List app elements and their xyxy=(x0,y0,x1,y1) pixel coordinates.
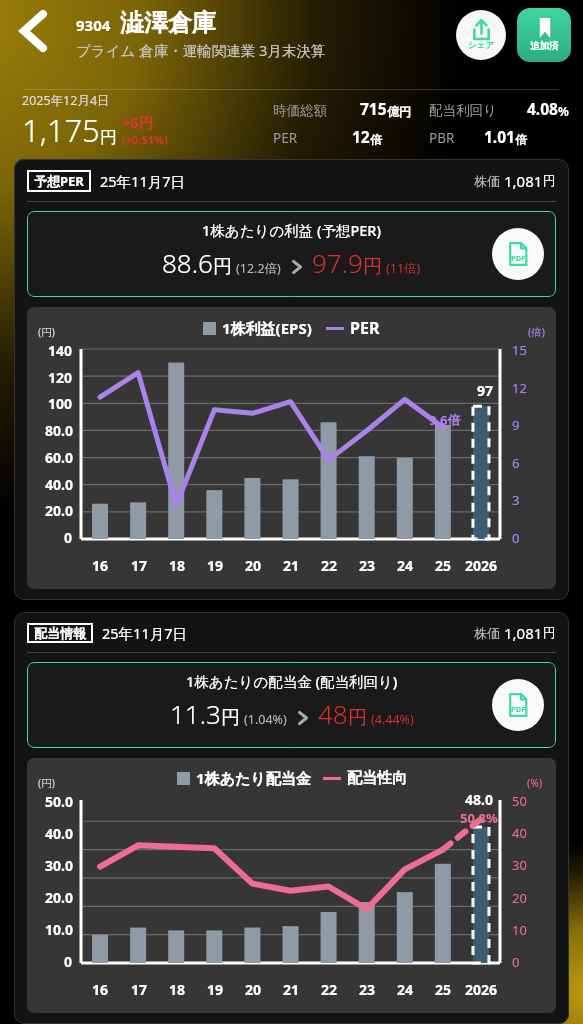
staticText: PER xyxy=(273,129,298,147)
staticText: 140 xyxy=(48,341,73,360)
staticText: 97.9 xyxy=(312,245,363,280)
staticText: 16 xyxy=(92,556,109,575)
staticText: 4.08 xyxy=(527,98,558,119)
staticText: 50.0 xyxy=(45,792,73,811)
staticText: 6 xyxy=(512,454,520,472)
staticText: 20 xyxy=(245,556,262,575)
staticText: PBR xyxy=(429,129,455,147)
staticText: 1株あたり配当金 xyxy=(196,768,311,788)
staticText: プライム 倉庫・運輸関連業 3月末決算 xyxy=(76,40,326,60)
staticText: (%) xyxy=(527,776,543,790)
button[interactable]: 1株あたりの配当金 (配当利回り) xyxy=(27,662,556,748)
staticText: 1株利益(EPS) xyxy=(222,318,312,338)
staticText: 0 xyxy=(512,953,520,971)
staticText: 24 xyxy=(397,980,414,999)
button[interactable]: PDF xyxy=(492,679,544,731)
staticText: 40.0 xyxy=(45,824,73,843)
staticText: 18 xyxy=(169,556,186,575)
staticText: 80.0 xyxy=(45,421,73,440)
staticText: 2026 xyxy=(465,556,498,575)
staticText: 1,175 xyxy=(22,109,100,151)
staticText: 0 xyxy=(64,952,73,971)
staticText: 15 xyxy=(512,341,527,359)
staticText: 12 xyxy=(512,379,527,397)
staticText: (倍) xyxy=(528,325,545,339)
staticText: 715 xyxy=(360,98,387,119)
button[interactable]: PDF xyxy=(492,228,544,280)
staticText: 配当性向 xyxy=(347,769,407,788)
staticText: 3 xyxy=(512,491,520,509)
staticText: 25年11月7日 xyxy=(102,623,187,643)
button[interactable]: 1株あたりの利益 (予想PER) xyxy=(27,211,556,297)
staticText: 倍 xyxy=(370,132,382,147)
staticText: 12 xyxy=(352,126,370,147)
staticText: 予想PER xyxy=(34,172,84,190)
staticText: PER xyxy=(350,317,380,339)
staticText: 株価 xyxy=(474,172,504,190)
staticText: (4.44%) xyxy=(371,711,414,728)
staticText: 16 xyxy=(92,980,109,999)
staticText: 0 xyxy=(512,529,520,547)
staticText: 60.0 xyxy=(45,448,73,467)
staticText: 100 xyxy=(48,394,73,413)
staticText: 21 xyxy=(283,980,300,999)
staticText: 1株あたりの利益 (予想PER) xyxy=(202,220,382,240)
staticText: (円) xyxy=(38,776,55,790)
staticText: 1.01 xyxy=(484,126,515,147)
staticText: 0 xyxy=(64,528,73,547)
staticText: 1,081 xyxy=(504,171,543,191)
staticText: 倍 xyxy=(515,132,527,147)
staticText: 21 xyxy=(283,556,300,575)
staticText: 配当情報 xyxy=(34,625,86,641)
staticText: 40 xyxy=(512,824,527,842)
staticText: 25 xyxy=(435,980,452,999)
staticText: 120 xyxy=(48,368,73,387)
staticText: 2025年12月4日 xyxy=(22,92,110,109)
button[interactable]: 戻る xyxy=(4,2,62,60)
staticText: 時価総額 xyxy=(273,102,327,119)
staticText: 48.0 xyxy=(465,790,493,809)
staticText: 23 xyxy=(359,556,376,575)
staticText: 10 xyxy=(512,921,527,939)
staticText: 50.8% xyxy=(460,809,498,827)
staticText: 追加済 xyxy=(530,40,559,52)
staticText: 17 xyxy=(131,980,148,999)
staticText: 24 xyxy=(397,556,414,575)
button[interactable]: シェア xyxy=(456,10,506,60)
staticText: 円 xyxy=(363,255,382,279)
staticText: 17 xyxy=(131,556,148,575)
staticText: PDF xyxy=(511,253,526,263)
staticText: 1,081 xyxy=(504,623,543,643)
staticText: 40.0 xyxy=(45,475,73,494)
staticText: 20 xyxy=(512,889,527,907)
staticText: 25 xyxy=(435,556,452,575)
staticText: 9.6倍 xyxy=(429,411,461,429)
staticText: 20.0 xyxy=(45,888,73,907)
staticText: % xyxy=(558,103,569,119)
staticText: 22 xyxy=(321,980,338,999)
staticText: 10.0 xyxy=(45,920,73,939)
staticText: 株価 xyxy=(474,624,504,642)
staticText: (12.2倍) xyxy=(236,260,281,277)
staticText: 9 xyxy=(512,416,520,434)
staticText: (1.04%) xyxy=(244,711,287,728)
staticText: 30 xyxy=(512,856,527,874)
staticText: (円) xyxy=(38,325,55,339)
staticText: 18 xyxy=(169,980,186,999)
staticText: 9304 xyxy=(76,15,111,35)
staticText: 48 xyxy=(318,696,348,731)
staticText: 配当利回り xyxy=(429,102,497,119)
staticText: PDF xyxy=(511,704,526,714)
staticText: 円 xyxy=(100,127,117,148)
staticText: シェア xyxy=(468,40,495,51)
staticText: +6円 xyxy=(122,112,154,132)
staticText: 19 xyxy=(207,980,224,999)
staticText: 1株あたりの配当金 (配当利回り) xyxy=(186,671,398,691)
staticText: 澁澤倉庫 xyxy=(120,8,216,38)
staticText: 22 xyxy=(321,556,338,575)
staticText: (11倍) xyxy=(386,260,421,277)
staticText: 50 xyxy=(512,792,527,810)
staticText: 円 xyxy=(348,706,367,730)
button[interactable]: 追加済 xyxy=(517,8,571,62)
staticText: 19 xyxy=(207,556,224,575)
